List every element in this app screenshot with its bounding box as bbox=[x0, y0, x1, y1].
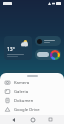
button[interactable] bbox=[35, 49, 61, 60]
button[interactable]: Kamera bbox=[0, 78, 64, 87]
staticText: Dokumen bbox=[14, 98, 34, 104]
button[interactable] bbox=[3, 70, 61, 82]
button[interactable] bbox=[35, 36, 61, 46]
button[interactable]: Recent apps bbox=[46, 115, 55, 124]
button[interactable]: Galeria bbox=[0, 87, 64, 96]
staticText: Google Drive bbox=[14, 107, 40, 113]
button[interactable]: Back bbox=[9, 115, 18, 124]
staticText: 13° bbox=[7, 46, 15, 53]
button[interactable]: Google Drive bbox=[0, 105, 64, 114]
staticText: Kamera bbox=[14, 80, 30, 86]
button[interactable]: 13° bbox=[4, 36, 32, 60]
staticText: Galeria bbox=[14, 89, 28, 95]
button[interactable]: Home bbox=[28, 115, 37, 124]
button[interactable]: Dokumen bbox=[0, 96, 64, 105]
